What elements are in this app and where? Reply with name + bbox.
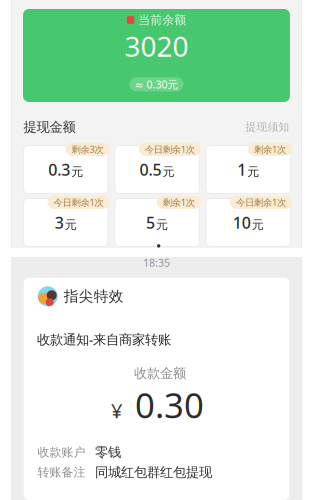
button[interactable]: 1 [206,142,291,193]
button[interactable]: 10 [206,195,291,246]
staticText: 元 [65,217,77,232]
staticText: 收款账户 [38,445,86,460]
staticText: ¥ [111,397,122,424]
staticText: 同城红包群红包提现 [95,464,212,480]
staticText: 提现金额 [23,119,75,135]
staticText: ≈ 0.30元 [134,77,178,91]
button[interactable]: 提现须知 [245,120,289,133]
button[interactable]: 3 [23,195,108,246]
staticText: 1 [237,159,246,180]
staticText: 收款金额 [134,365,186,381]
staticText: 收款通知-来自商家转账 [37,330,171,348]
staticText: 元 [247,164,259,179]
staticText: 元 [156,217,168,232]
staticText: 元 [252,217,264,232]
staticText: 元 [71,164,83,179]
staticText: 提现须知 [245,120,289,133]
staticText: 剩余1次 [254,143,286,155]
button[interactable]: 0.5 [115,142,199,193]
staticText: 今日剩余1次 [236,196,286,208]
staticText: 剩余1次 [163,196,195,208]
staticText: 剩余3次 [71,143,103,155]
button[interactable]: 5 [115,195,199,246]
staticText: 0.3 [48,159,70,180]
staticText: 18:35 [143,255,170,270]
staticText: 今日剩余1次 [145,143,195,155]
staticText: 转账备注 [38,465,86,480]
staticText: 0.30 [135,382,204,428]
staticText: 5 [146,212,155,233]
staticText: 指尖特效 [64,287,124,305]
staticText: 零钱 [95,444,121,460]
staticText: 元 [163,164,175,179]
staticText: 3 [55,212,64,233]
staticText: 今日剩余1次 [53,196,103,208]
staticText: 当前余额 [138,13,186,27]
staticText: 3020 [124,27,188,65]
button[interactable]: 0.3 [23,142,108,193]
button[interactable]: 指尖特效 [24,278,289,500]
staticText: 10 [233,212,251,233]
staticText: 0.5 [140,159,162,180]
